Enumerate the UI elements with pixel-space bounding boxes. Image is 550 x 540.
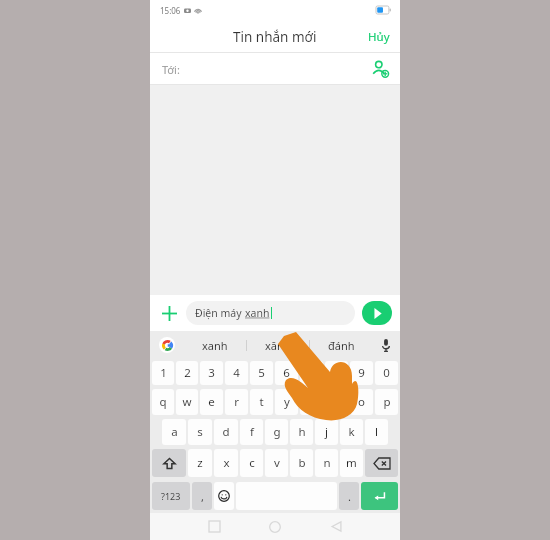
- staticText: j: [325, 424, 328, 440]
- button[interactable]: w: [176, 389, 198, 415]
- button[interactable]: s: [188, 419, 212, 445]
- staticText: y: [284, 394, 290, 410]
- staticText: k: [348, 424, 355, 440]
- button[interactable]: Hủy: [358, 23, 400, 51]
- button[interactable]: o: [350, 389, 373, 415]
- button[interactable]: h: [290, 419, 313, 445]
- staticText: Tới:: [162, 62, 180, 77]
- button[interactable]: 8: [325, 361, 348, 385]
- button[interactable]: j: [315, 419, 338, 445]
- button[interactable]: 6: [275, 361, 298, 385]
- button[interactable]: Send: [362, 301, 392, 325]
- button[interactable]: Home: [260, 513, 290, 540]
- staticText: r: [234, 394, 239, 410]
- button[interactable]: 2: [176, 361, 198, 385]
- button[interactable]: p: [375, 389, 398, 415]
- staticText: a: [171, 424, 178, 440]
- staticText: 6: [283, 365, 290, 381]
- button[interactable]: Backspace: [365, 449, 398, 477]
- button[interactable]: y: [275, 389, 298, 415]
- button[interactable]: x: [214, 449, 238, 477]
- button[interactable]: Google: [150, 331, 184, 359]
- staticText: 9: [358, 365, 365, 381]
- staticText: ,: [201, 489, 204, 504]
- button[interactable]: 1: [152, 361, 174, 385]
- button[interactable]: ,: [192, 482, 212, 510]
- staticText: h: [298, 424, 306, 440]
- staticText: Tin nhắn mới: [233, 28, 317, 46]
- button[interactable]: Recent apps: [199, 513, 229, 540]
- button[interactable]: z: [188, 449, 212, 477]
- button[interactable]: 0: [375, 361, 398, 385]
- staticText: z: [197, 455, 203, 471]
- button[interactable]: t: [250, 389, 273, 415]
- button[interactable]: r: [225, 389, 248, 415]
- staticText: đánh: [328, 338, 355, 353]
- staticText: t: [259, 394, 264, 410]
- staticText: l: [375, 424, 378, 440]
- staticText: n: [323, 455, 331, 471]
- button[interactable]: Shift: [152, 449, 186, 477]
- staticText: w: [182, 394, 192, 410]
- staticText: 4: [233, 365, 240, 381]
- button[interactable]: 9: [350, 361, 373, 385]
- staticText: x: [223, 455, 230, 471]
- staticText: o: [358, 394, 365, 410]
- button[interactable]: l: [365, 419, 388, 445]
- staticText: v: [274, 455, 280, 471]
- button[interactable]: Attach: [158, 302, 180, 324]
- staticText: 0: [383, 365, 390, 381]
- staticText: ?123: [161, 490, 181, 502]
- staticText: m: [346, 455, 357, 471]
- button[interactable]: Enter: [361, 482, 398, 510]
- button[interactable]: e: [200, 389, 223, 415]
- button[interactable]: Điện máy: [186, 301, 355, 325]
- staticText: 3: [208, 365, 215, 381]
- staticText: 15:06: [160, 5, 181, 16]
- button[interactable]: c: [240, 449, 263, 477]
- button[interactable]: m: [340, 449, 363, 477]
- button[interactable]: 7: [300, 361, 323, 385]
- staticText: 5: [258, 365, 265, 381]
- button[interactable]: Add contact: [370, 59, 390, 79]
- staticText: xanh: [202, 338, 228, 353]
- staticText: p: [383, 394, 391, 410]
- button[interactable]: f: [240, 419, 263, 445]
- staticText: e: [208, 394, 215, 410]
- button[interactable]: xăng: [247, 331, 309, 359]
- button[interactable]: xanh: [184, 331, 246, 359]
- button[interactable]: q: [152, 389, 174, 415]
- button[interactable]: Back: [321, 513, 351, 540]
- staticText: f: [250, 424, 254, 440]
- button[interactable]: d: [214, 419, 238, 445]
- staticText: .: [348, 489, 351, 504]
- button[interactable]: 4: [225, 361, 248, 385]
- staticText: 1: [160, 365, 167, 381]
- staticText: s: [197, 424, 203, 440]
- button[interactable]: a: [162, 419, 186, 445]
- staticText: 2: [184, 365, 191, 381]
- button[interactable]: ?123: [152, 482, 190, 510]
- button[interactable]: đánh: [310, 331, 372, 359]
- button[interactable]: u: [300, 389, 323, 415]
- button[interactable]: n: [315, 449, 338, 477]
- staticText: b: [298, 455, 306, 471]
- button[interactable]: .: [339, 482, 359, 510]
- button[interactable]: v: [265, 449, 288, 477]
- button[interactable]: Emoji: [214, 482, 234, 510]
- staticText: g: [273, 424, 281, 440]
- button[interactable]: 5: [250, 361, 273, 385]
- button[interactable]: g: [265, 419, 288, 445]
- staticText: Điện máy: [195, 306, 245, 320]
- button[interactable]: k: [340, 419, 363, 445]
- button[interactable]: 3: [200, 361, 223, 385]
- staticText: xanh: [245, 306, 270, 320]
- button[interactable]: b: [290, 449, 313, 477]
- button[interactable]: Voice input: [372, 331, 400, 359]
